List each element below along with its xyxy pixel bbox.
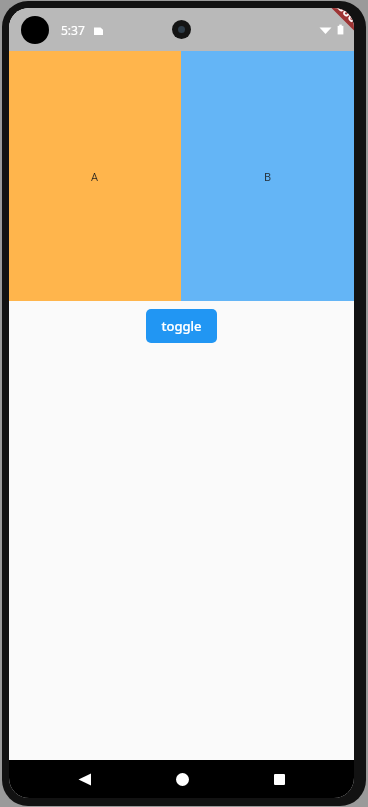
staticText: A bbox=[91, 169, 99, 184]
staticText: DEBUG bbox=[326, 8, 354, 25]
staticText: toggle bbox=[161, 317, 202, 335]
button[interactable]: Recent apps bbox=[257, 760, 301, 798]
staticText: B bbox=[264, 169, 272, 184]
button[interactable]: toggle bbox=[146, 309, 217, 343]
staticText: 5:37 bbox=[61, 22, 85, 38]
button[interactable]: Home bbox=[160, 760, 204, 798]
button[interactable]: B bbox=[181, 51, 354, 301]
button[interactable]: Back bbox=[62, 760, 106, 798]
button[interactable]: A bbox=[9, 51, 181, 301]
